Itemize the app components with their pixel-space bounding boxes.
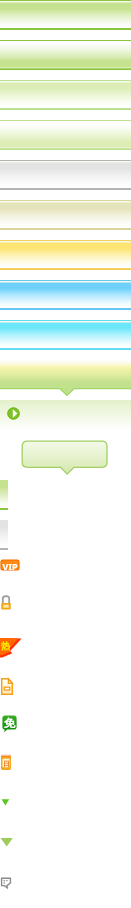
staticText: 免 [4,716,15,730]
staticText: 日 [3,759,10,768]
button[interactable]: Locked [1,595,11,611]
button[interactable]: VIP [0,559,20,571]
button[interactable]: Calendar [1,754,11,770]
button[interactable]: Play [7,407,20,420]
staticText: VIP [0,560,20,572]
staticText: 热 [1,640,10,651]
button[interactable]: 免 [2,715,17,733]
button[interactable]: Document [1,678,13,695]
